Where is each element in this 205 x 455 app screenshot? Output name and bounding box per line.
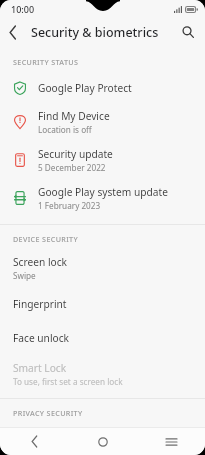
staticText: To use, first set a screen lock — [13, 376, 123, 387]
staticText: Security update — [38, 147, 113, 161]
staticText: Location is off — [38, 124, 92, 135]
button[interactable]: Face unlock — [0, 321, 205, 355]
button[interactable]: Google Play Protect — [0, 73, 205, 103]
button[interactable]: Google Play system update — [0, 179, 205, 217]
button[interactable]: Smart Lock — [0, 355, 205, 393]
staticText: Screen lock — [13, 255, 68, 269]
button[interactable]: Fingerprint — [0, 287, 205, 321]
staticText: Google Play system update — [38, 185, 168, 199]
button[interactable]: Home — [69, 428, 137, 455]
staticText: Find My Device — [38, 109, 110, 123]
button[interactable]: Recent apps — [137, 428, 205, 455]
button[interactable]: Search — [176, 20, 200, 44]
staticText: PRIVACY SECURITY — [13, 408, 83, 418]
staticText: 10:00 — [11, 3, 35, 15]
button[interactable]: Back — [0, 428, 69, 455]
staticText: 1 February 2023 — [38, 200, 101, 211]
button[interactable]: Back — [0, 19, 26, 45]
staticText: Fingerprint — [13, 297, 67, 311]
staticText: Smart Lock — [13, 361, 67, 375]
staticText: 5 December 2022 — [38, 162, 106, 173]
staticText: DEVICE SECURITY — [13, 234, 79, 244]
staticText: Swipe — [13, 270, 36, 281]
staticText: Security & biometrics — [31, 24, 159, 41]
staticText: SECURITY STATUS — [13, 57, 79, 67]
button[interactable]: Screen lock — [0, 249, 205, 287]
button[interactable]: Find My Device — [0, 103, 205, 141]
staticText: Google Play Protect — [38, 81, 132, 95]
staticText: Face unlock — [13, 331, 70, 345]
button[interactable]: Security update — [0, 141, 205, 179]
